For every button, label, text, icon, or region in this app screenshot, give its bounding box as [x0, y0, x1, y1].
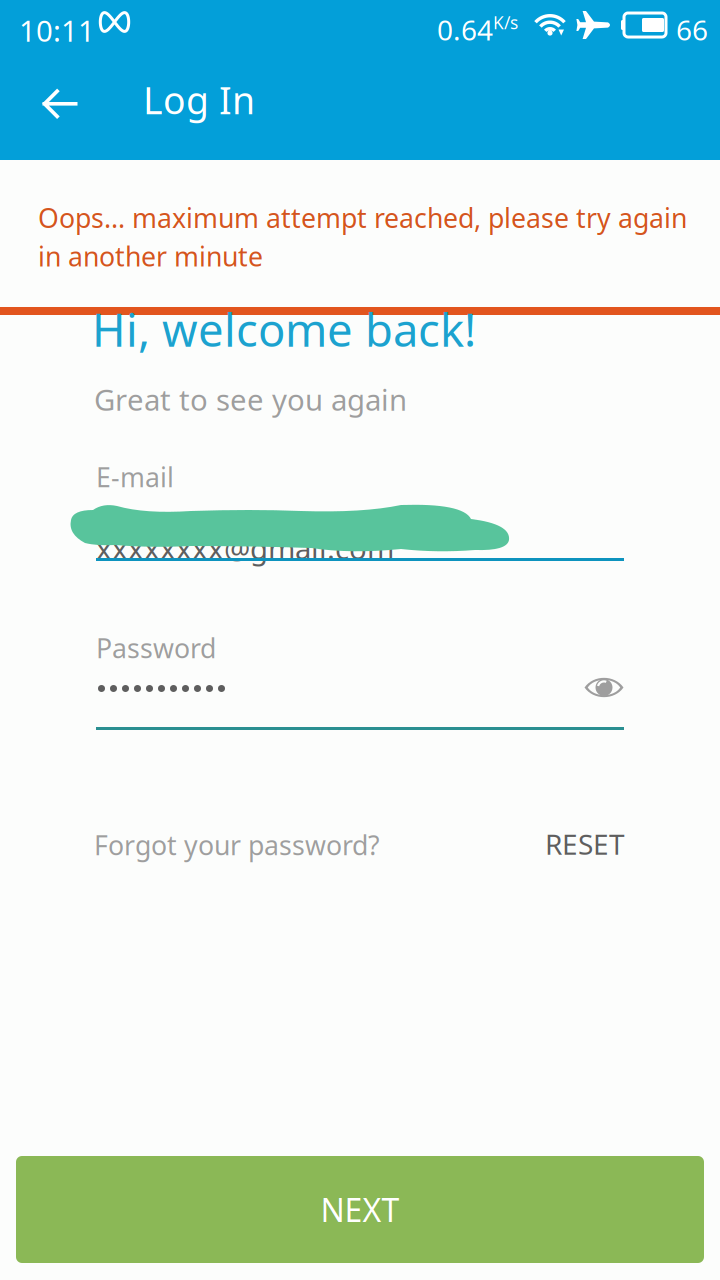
button[interactable]: E-mail — [96, 460, 624, 562]
staticText: Forgot your password? — [94, 827, 380, 863]
staticText: RESET — [545, 825, 625, 863]
staticText: NEXT — [320, 1188, 399, 1231]
button[interactable]: NEXT — [16, 1156, 704, 1263]
button[interactable]: Back — [24, 82, 96, 126]
staticText: Log In — [143, 75, 255, 125]
staticText: K/s — [493, 11, 518, 34]
button[interactable]: Password — [96, 631, 566, 731]
staticText: E-mail — [96, 459, 174, 495]
staticText: xxxxxxxx@gmail.com — [96, 528, 394, 567]
button[interactable]: Forgot your password? — [94, 826, 384, 864]
staticText: Great to see you again — [94, 380, 407, 419]
staticText: 0.64 — [437, 11, 493, 48]
staticText: 10:11 — [19, 11, 95, 50]
staticText: Password — [96, 630, 216, 666]
button[interactable]: Show password — [584, 674, 624, 701]
staticText: in another minute — [38, 238, 263, 274]
staticText: Hi, welcome back! — [92, 299, 476, 359]
button[interactable]: RESET — [425, 824, 625, 864]
staticText: 66 — [676, 11, 708, 48]
staticText: Oops... maximum attempt reached, please … — [38, 200, 687, 235]
